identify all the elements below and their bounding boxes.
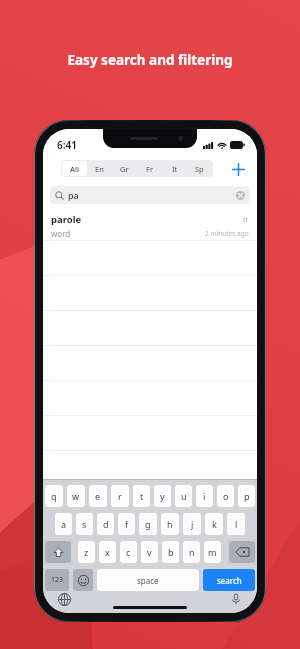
button[interactable]: Backspace: [229, 541, 255, 563]
button[interactable]: space: [97, 569, 199, 591]
button[interactable]: i: [196, 485, 213, 507]
staticText: v: [147, 546, 152, 558]
staticText: k: [212, 518, 217, 530]
staticText: y: [160, 490, 165, 502]
staticText: x: [105, 546, 110, 558]
button[interactable]: c: [120, 541, 137, 563]
staticText: a: [61, 518, 67, 530]
staticText: Easy search and filtering: [0, 51, 300, 69]
button[interactable]: Add: [227, 158, 249, 180]
staticText: r: [118, 490, 122, 502]
staticText: u: [181, 490, 187, 502]
staticText: d: [103, 518, 109, 530]
button[interactable]: Fr: [137, 161, 162, 176]
staticText: It: [172, 164, 178, 174]
staticText: p: [244, 490, 250, 502]
button[interactable]: parole: [43, 208, 257, 241]
button[interactable]: Shift: [45, 541, 71, 563]
button[interactable]: Emoji: [73, 569, 93, 591]
button[interactable]: Dictate: [227, 590, 245, 608]
staticText: q: [51, 490, 57, 502]
staticText: m: [208, 546, 217, 558]
staticText: l: [235, 518, 238, 530]
button[interactable]: x: [99, 541, 116, 563]
button[interactable]: En: [87, 161, 112, 176]
button[interactable]: p: [238, 485, 255, 507]
button[interactable]: q: [45, 485, 63, 507]
staticText: e: [95, 490, 101, 502]
staticText: pa: [68, 189, 79, 201]
staticText: s: [82, 518, 87, 530]
staticText: 2 minutes ago: [205, 229, 249, 238]
button[interactable]: u: [175, 485, 192, 507]
button[interactable]: 123: [45, 569, 69, 591]
button[interactable]: o: [217, 485, 234, 507]
staticText: w: [72, 490, 80, 502]
button[interactable]: b: [162, 541, 179, 563]
staticText: f: [125, 518, 129, 530]
staticText: word: [51, 228, 71, 239]
button[interactable]: d: [97, 513, 114, 535]
button[interactable]: w: [67, 485, 85, 507]
staticText: Fr: [146, 164, 153, 174]
staticText: 123: [51, 575, 64, 585]
button[interactable]: pa: [50, 186, 250, 204]
button[interactable]: search: [203, 569, 255, 591]
button[interactable]: r: [111, 485, 129, 507]
button[interactable]: f: [118, 513, 135, 535]
staticText: b: [168, 546, 174, 558]
button[interactable]: h: [161, 513, 179, 535]
staticText: space: [137, 575, 159, 586]
button[interactable]: k: [205, 513, 223, 535]
button[interactable]: t: [133, 485, 150, 507]
staticText: i: [203, 490, 206, 502]
button[interactable]: e: [89, 485, 107, 507]
staticText: n: [189, 546, 195, 558]
staticText: 6:41: [57, 138, 77, 152]
button[interactable]: a: [55, 513, 72, 535]
staticText: z: [84, 546, 89, 558]
button[interactable]: s: [76, 513, 93, 535]
staticText: search: [217, 575, 242, 586]
button[interactable]: It: [162, 161, 187, 176]
staticText: parole: [51, 213, 82, 226]
staticText: c: [126, 546, 131, 558]
button[interactable]: y: [154, 485, 171, 507]
staticText: g: [145, 518, 151, 530]
button[interactable]: Sp: [187, 161, 212, 176]
staticText: j: [191, 518, 194, 530]
button[interactable]: l: [227, 513, 245, 535]
button[interactable]: v: [141, 541, 158, 563]
button[interactable]: g: [139, 513, 157, 535]
staticText: All: [70, 164, 79, 174]
button[interactable]: All: [62, 161, 87, 176]
staticText: h: [167, 518, 173, 530]
button[interactable]: Switch keyboard language: [55, 590, 73, 608]
button[interactable]: m: [204, 541, 221, 563]
button[interactable]: Gr: [112, 161, 137, 176]
staticText: o: [223, 490, 229, 502]
staticText: Gr: [120, 164, 129, 174]
staticText: t: [140, 490, 144, 502]
button[interactable]: j: [183, 513, 201, 535]
staticText: fr: [243, 215, 249, 225]
button[interactable]: Clear search: [235, 190, 245, 200]
staticText: En: [95, 164, 104, 174]
staticText: Sp: [195, 164, 204, 174]
button[interactable]: z: [78, 541, 95, 563]
button[interactable]: n: [183, 541, 200, 563]
